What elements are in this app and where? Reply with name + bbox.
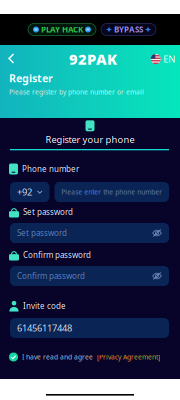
button[interactable]: +92 <box>10 182 49 202</box>
staticText: Confirm password <box>17 271 85 281</box>
staticText: EN <box>163 53 175 65</box>
staticText: +92 <box>17 186 32 198</box>
staticText: Please register by phone number or email <box>9 88 144 96</box>
button[interactable]: Show password <box>152 271 162 280</box>
staticText: [Privacy Agreement] <box>97 353 160 361</box>
staticText: Please enter the phone number <box>61 188 162 196</box>
staticText: Set password <box>23 207 73 217</box>
button[interactable]: Register your phone <box>10 120 170 146</box>
staticText: I have read and agree <box>22 353 93 361</box>
staticText: PLAY HACK <box>41 24 83 35</box>
staticText: Phone number <box>22 164 79 174</box>
button[interactable]: Show password <box>152 228 162 237</box>
button[interactable]: PLAY HACK <box>28 23 96 35</box>
staticText: 92PAK <box>69 49 117 69</box>
staticText: Set password <box>17 228 67 238</box>
button[interactable]: BYPASS <box>101 23 156 35</box>
staticText: Register your phone <box>45 133 134 146</box>
button[interactable]: EN <box>151 53 175 65</box>
staticText: Register <box>9 71 53 85</box>
button[interactable]: Back <box>5 51 18 66</box>
staticText: BYPASS <box>114 24 143 35</box>
staticText: Invite code <box>23 301 66 311</box>
staticText: 61456117448 <box>17 322 72 334</box>
staticText: Confirm password <box>23 250 91 260</box>
button[interactable]: I have read and agree <box>9 352 160 361</box>
